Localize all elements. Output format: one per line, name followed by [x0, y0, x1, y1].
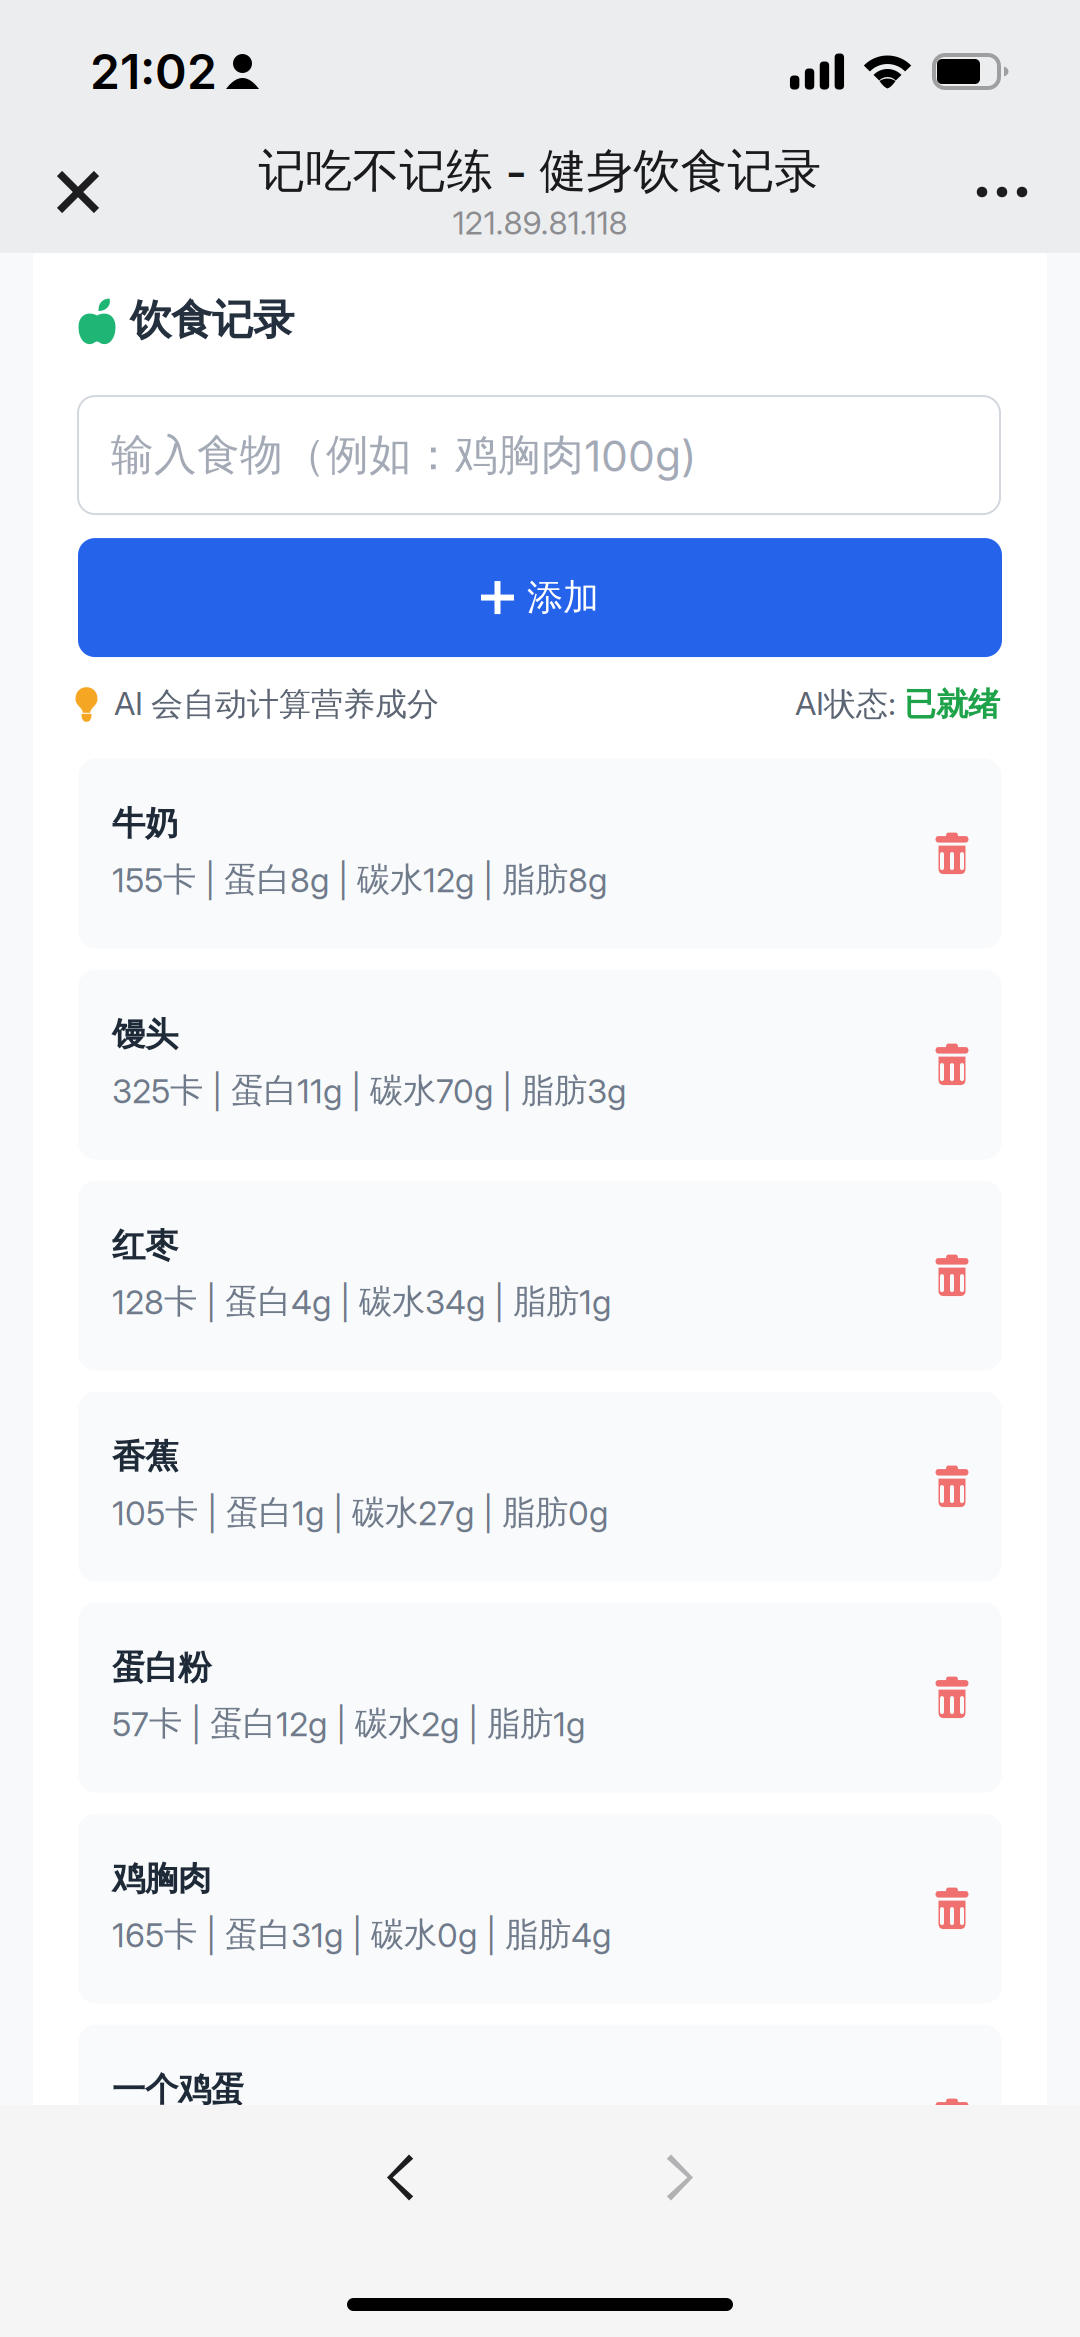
- staticText: 鸡胸肉: [112, 1858, 211, 1900]
- staticText: 已就绪: [904, 684, 1000, 724]
- staticText: 输入食物（例如：鸡胸肉100g): [111, 428, 697, 482]
- staticText: 325卡 | 蛋白11g | 碳水70g | 脂肪3g: [112, 1070, 626, 1112]
- button[interactable]: 关闭: [28, 138, 128, 246]
- staticText: 红枣: [112, 1225, 178, 1267]
- staticText: 记吃不记练 - 健身饮食记录: [258, 142, 821, 200]
- staticText: 78卡 | 蛋白6g | 碳水1g | 脂肪5g: [112, 2125, 573, 2167]
- staticText: AI状态:: [795, 684, 904, 725]
- staticText: 105卡 | 蛋白1g | 碳水27g | 脂肪0g: [112, 1492, 608, 1534]
- staticText: 蛋白粉: [112, 1647, 211, 1689]
- staticText: 香蕉: [112, 1436, 178, 1478]
- staticText: 121.89.81.118: [452, 203, 627, 242]
- button[interactable]: 后退: [340, 2117, 460, 2237]
- staticText: 57卡 | 蛋白12g | 碳水2g | 脂肪1g: [112, 1703, 585, 1745]
- staticText: 馒头: [112, 1014, 178, 1056]
- staticText: 165卡 | 蛋白31g | 碳水0g | 脂肪4g: [112, 1914, 611, 1956]
- staticText: 21:02: [90, 42, 217, 101]
- staticText: 155卡 | 蛋白8g | 碳水12g | 脂肪8g: [112, 859, 607, 901]
- button[interactable]: 删除鸡胸肉: [916, 1873, 988, 1945]
- button[interactable]: 添加: [78, 538, 1002, 657]
- staticText: 牛奶: [112, 803, 178, 845]
- staticText: 一个鸡蛋: [112, 2069, 244, 2111]
- button[interactable]: 删除一个鸡蛋: [916, 2084, 988, 2156]
- staticText: AI 会自动计算营养成分: [114, 684, 439, 725]
- button[interactable]: 删除蛋白粉: [916, 1662, 988, 1734]
- button[interactable]: 更多: [952, 138, 1052, 246]
- button[interactable]: 删除馒头: [916, 1029, 988, 1101]
- button[interactable]: 前进: [620, 2117, 740, 2237]
- staticText: 128卡 | 蛋白4g | 碳水34g | 脂肪1g: [112, 1281, 611, 1323]
- button[interactable]: 删除红枣: [916, 1240, 988, 1312]
- button[interactable]: 删除牛奶: [916, 818, 988, 890]
- staticText: 添加: [527, 575, 599, 620]
- staticText: 饮食记录: [130, 294, 294, 346]
- button[interactable]: 删除香蕉: [916, 1451, 988, 1523]
